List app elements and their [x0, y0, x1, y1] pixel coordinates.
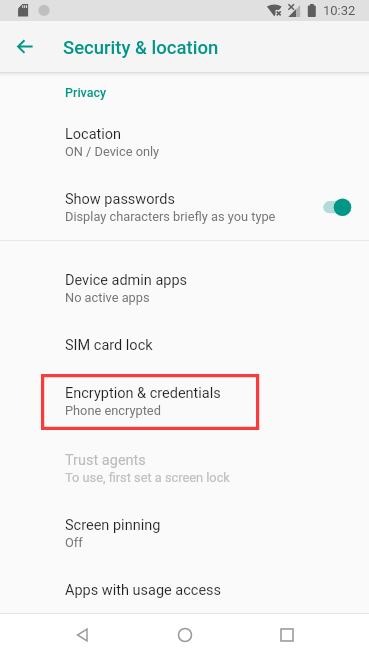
button[interactable]: Apps with usage access — [0, 568, 369, 618]
staticText: Display characters briefly as you type — [65, 209, 276, 224]
staticText: Security & location — [63, 37, 219, 59]
staticText: To use, first set a screen lock — [65, 470, 230, 485]
button[interactable]: Trust agents — [0, 439, 369, 501]
button[interactable]: Encryption & credentials — [0, 373, 369, 435]
button[interactable]: Device admin apps — [0, 259, 369, 321]
staticText: Location — [65, 126, 122, 143]
staticText: Apps with usage access — [65, 582, 222, 599]
button[interactable]: Location — [0, 116, 369, 178]
staticText: SIM card lock — [65, 337, 153, 354]
staticText: Screen pinning — [65, 517, 161, 534]
staticText: Device admin apps — [65, 272, 188, 289]
button[interactable]: Screen pinning — [0, 503, 369, 565]
staticText: Encryption & credentials — [65, 385, 221, 402]
staticText: Privacy — [65, 85, 107, 100]
button[interactable]: Show passwords — [318, 193, 358, 221]
staticText: 10:32 — [323, 3, 356, 18]
staticText: No active apps — [65, 290, 150, 305]
staticText: Show passwords — [65, 191, 175, 208]
button[interactable]: SIM card lock — [0, 323, 369, 373]
staticText: Off — [65, 535, 83, 550]
button[interactable]: Show passwords — [0, 178, 369, 240]
button[interactable]: Back — [7, 27, 47, 67]
button[interactable]: Home — [155, 613, 215, 656]
staticText: ON / Device only — [65, 144, 160, 159]
button[interactable]: Recent apps — [257, 613, 317, 656]
button[interactable]: Back — [53, 613, 113, 656]
staticText: Trust agents — [65, 452, 146, 469]
staticText: Phone encrypted — [65, 403, 161, 418]
